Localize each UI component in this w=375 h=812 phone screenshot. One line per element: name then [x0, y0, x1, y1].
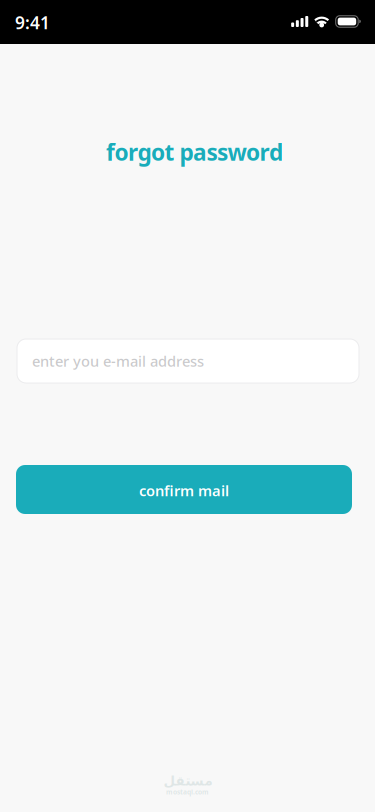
staticText: mostaql.com	[166, 788, 209, 796]
staticText: enter you e-mail address	[32, 351, 204, 371]
button[interactable]: confirm mail	[16, 465, 352, 514]
staticText: مستقل	[163, 773, 212, 788]
staticText: forgot password	[106, 137, 283, 167]
staticText: 9:41	[15, 11, 50, 34]
button[interactable]: enter you e-mail address	[17, 339, 359, 383]
staticText: confirm mail	[139, 481, 229, 500]
